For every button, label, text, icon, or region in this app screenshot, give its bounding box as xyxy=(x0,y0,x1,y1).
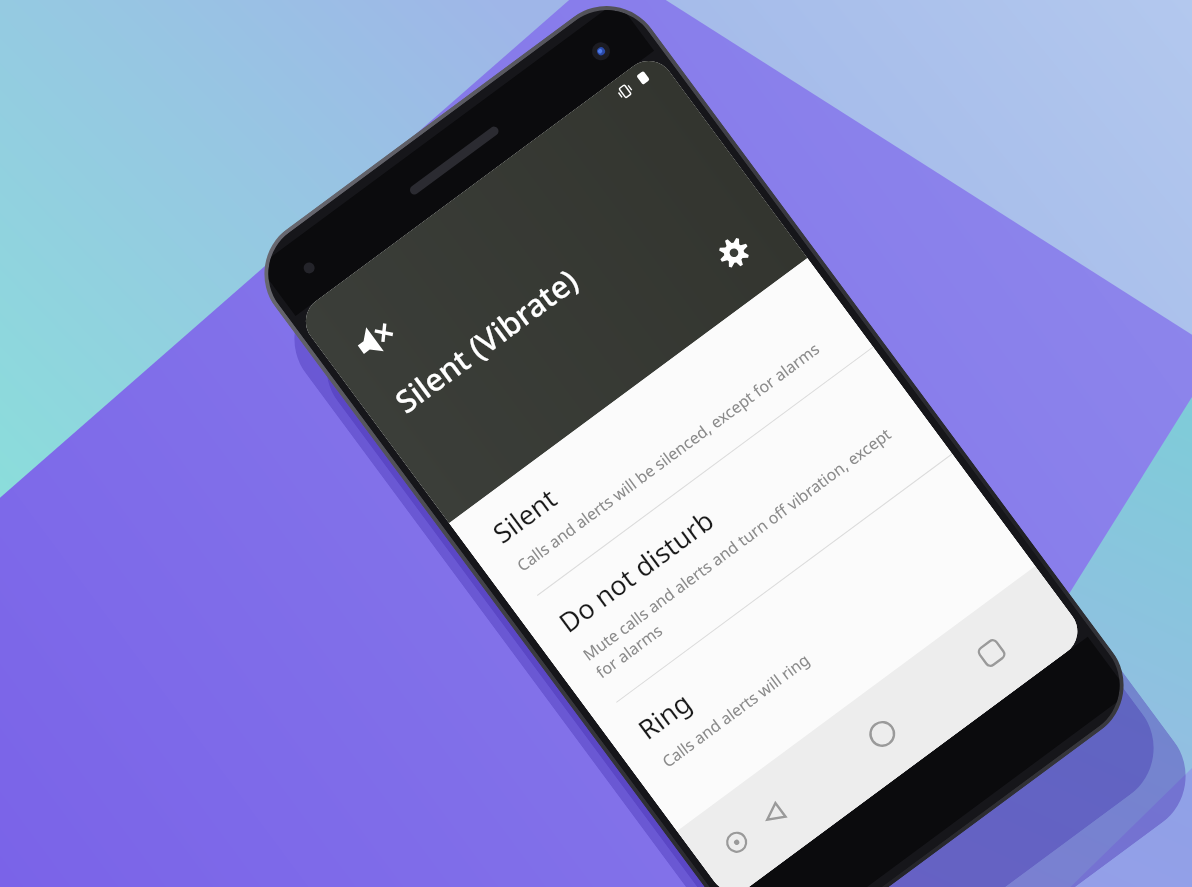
button[interactable]: Settings xyxy=(703,222,765,283)
button[interactable]: Screenshot xyxy=(707,813,765,871)
button[interactable]: Silent xyxy=(449,258,873,612)
button[interactable]: Back xyxy=(732,774,813,855)
button[interactable]: Home xyxy=(842,693,923,774)
staticText: Mute calls and alerts and turn off vibra… xyxy=(578,416,918,683)
button[interactable]: Do not disturb xyxy=(514,346,952,719)
staticText: Calls and alerts will ring xyxy=(657,649,814,772)
staticText: Silent (Vibrate) xyxy=(386,259,586,422)
staticText: Ring xyxy=(630,683,699,747)
button[interactable]: Ring xyxy=(594,453,1018,808)
staticText: Calls and alerts will be silenced, excep… xyxy=(512,338,824,576)
staticText: Silent xyxy=(485,479,564,551)
button[interactable]: Recents xyxy=(951,612,1032,694)
staticText: Do not disturb xyxy=(551,501,721,640)
